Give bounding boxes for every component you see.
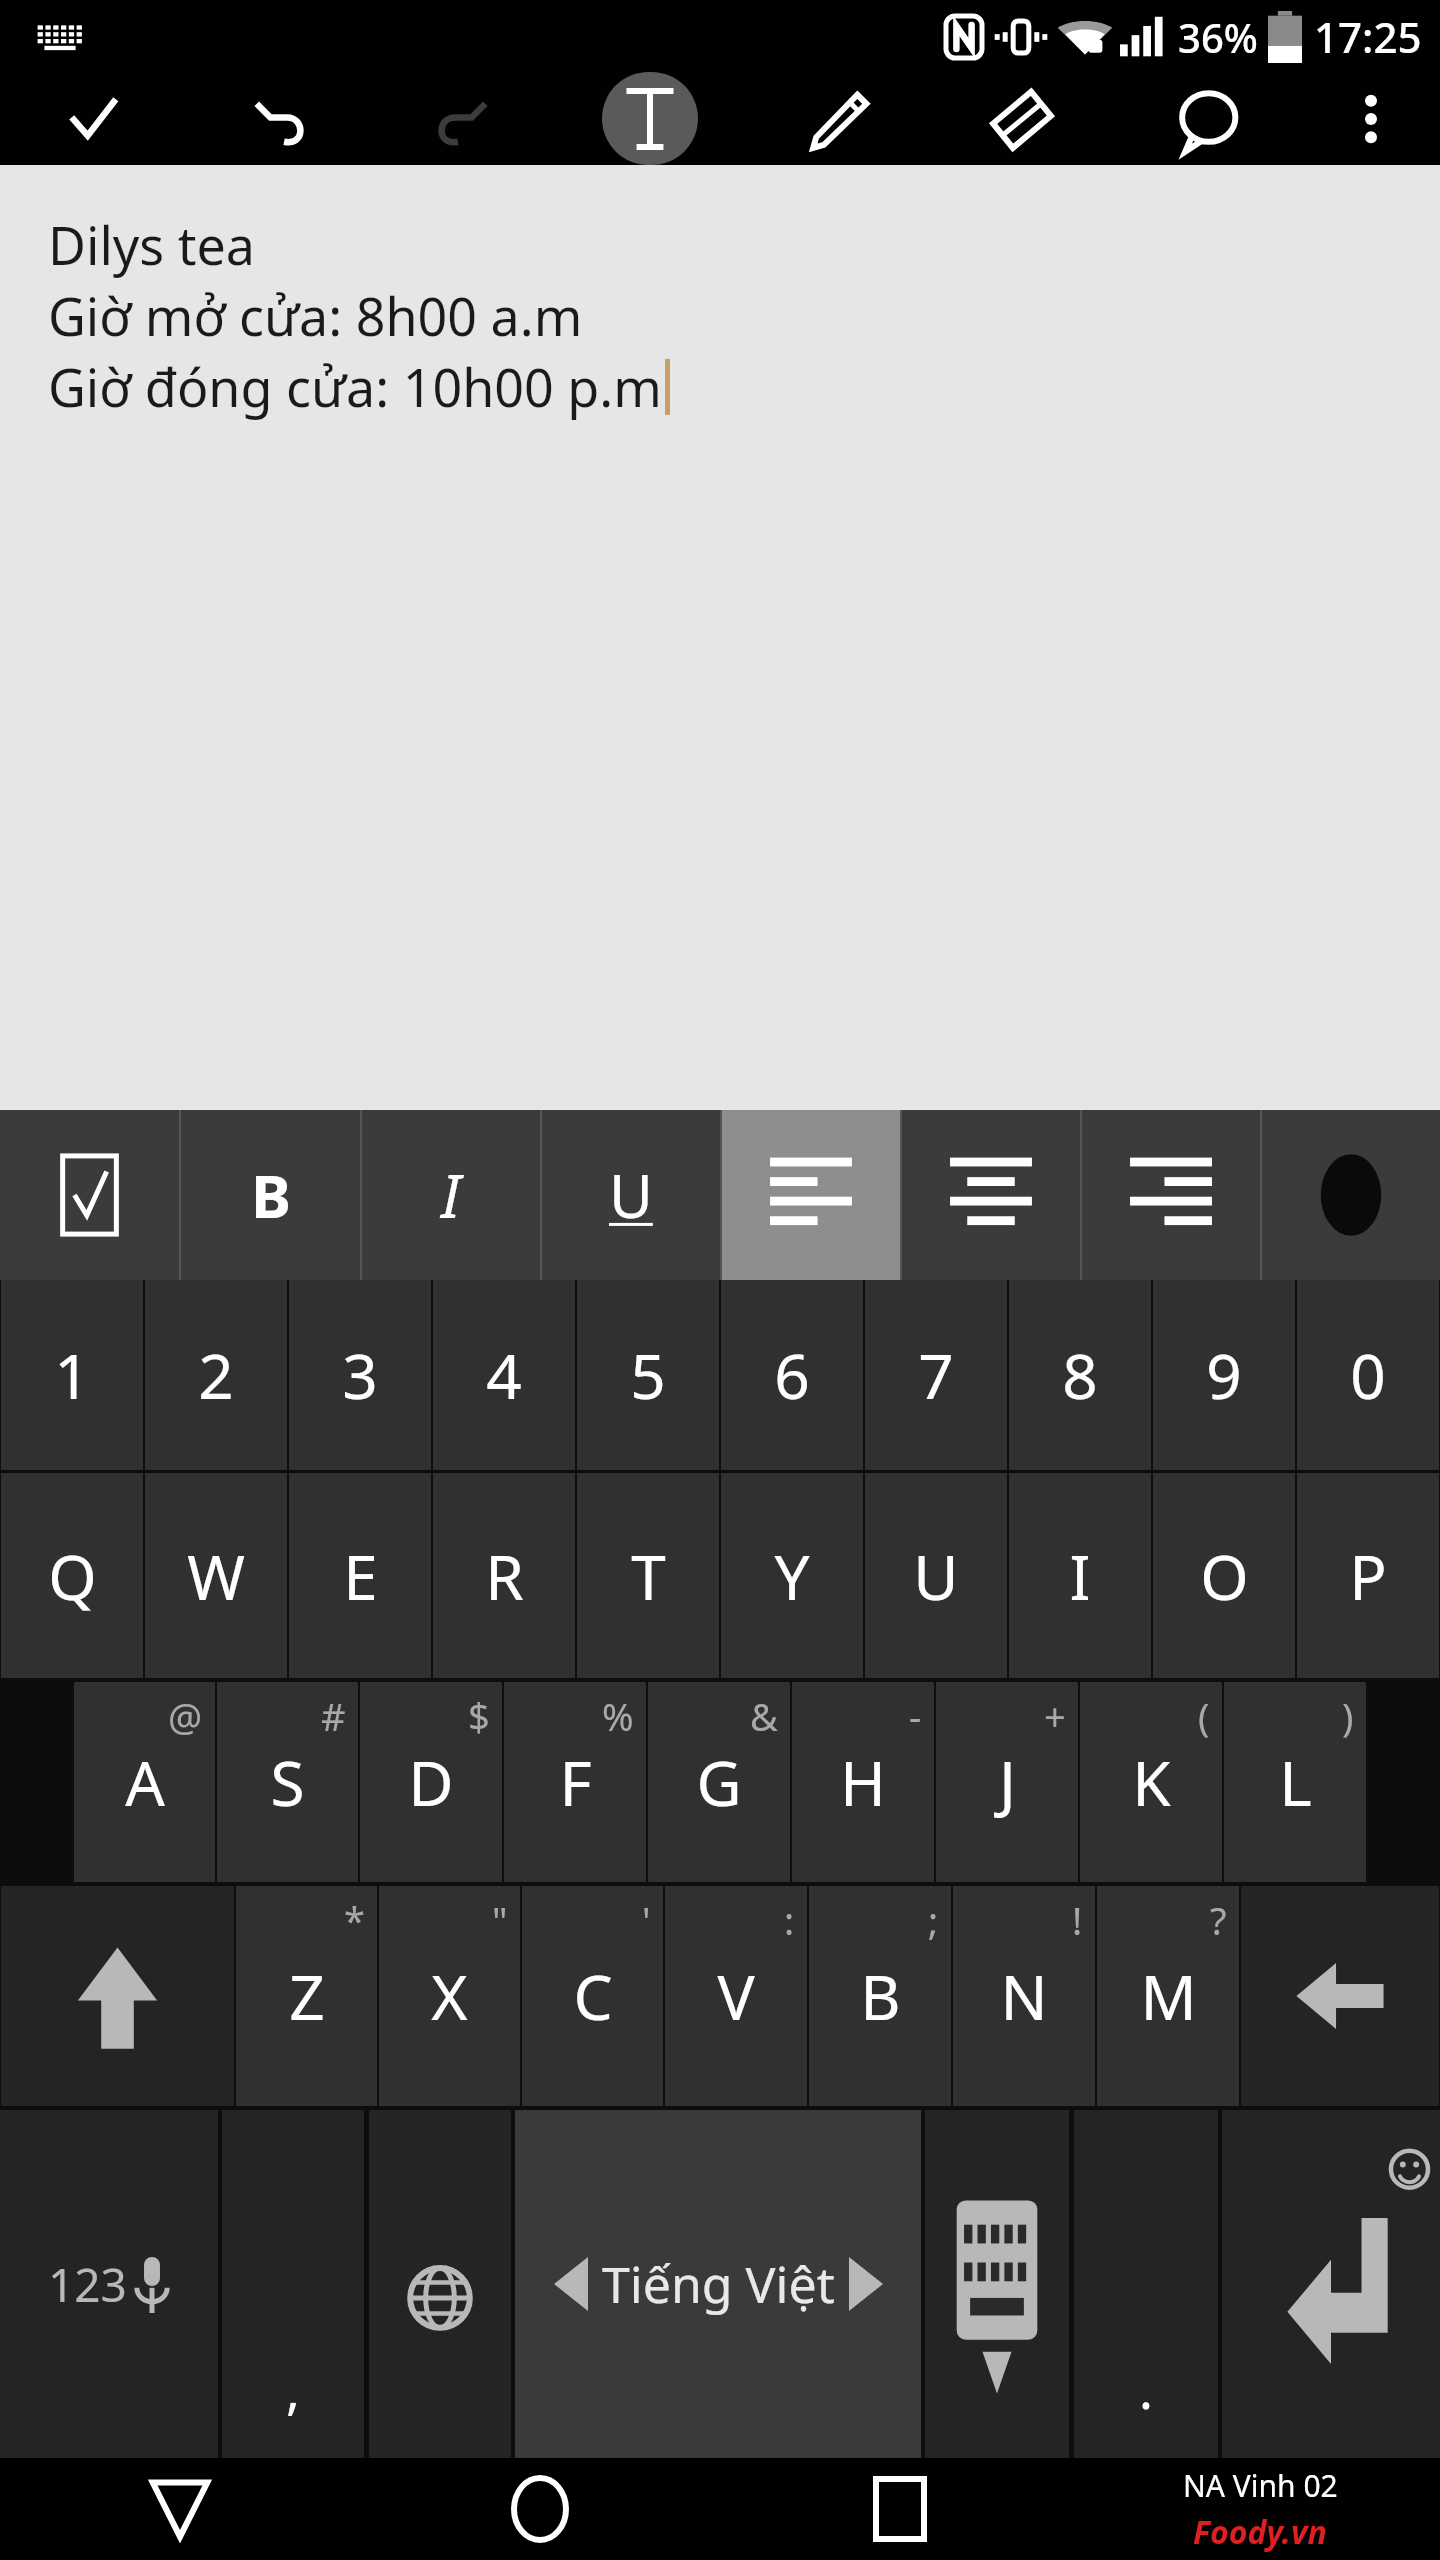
button[interactable]: Bold [181, 1110, 360, 1280]
staticText: K [1132, 1740, 1171, 1824]
staticText: W [187, 1534, 245, 1618]
button[interactable]: Undo [185, 72, 371, 165]
button[interactable]: 4 [433, 1280, 575, 1470]
button[interactable]: ; [809, 1886, 951, 2106]
staticText: Q [48, 1534, 97, 1618]
button[interactable]: U [865, 1473, 1007, 1678]
button[interactable]: Q [1, 1473, 143, 1678]
button[interactable]: Text colour [1262, 1110, 1440, 1280]
staticText: T [631, 1534, 666, 1618]
staticText: ! [1072, 1894, 1083, 1946]
button[interactable]: - [792, 1682, 934, 1882]
staticText: ? [1210, 1894, 1227, 1946]
staticText: - [909, 1690, 922, 1742]
staticText: 1 [54, 1333, 90, 1417]
button[interactable]: Underline [542, 1110, 720, 1280]
button[interactable]: Pen [743, 72, 929, 165]
button[interactable]: Back [0, 2458, 360, 2560]
button[interactable]: Align center [902, 1110, 1080, 1280]
button[interactable]: Enter [1222, 2110, 1440, 2458]
button[interactable]: Backspace [1241, 1886, 1439, 2106]
button[interactable]: More options [1301, 72, 1440, 165]
staticText: H [840, 1740, 886, 1824]
button[interactable]: ) [1224, 1682, 1366, 1882]
button[interactable]: W [145, 1473, 287, 1678]
button[interactable]: Hide keyboard [925, 2110, 1069, 2458]
button[interactable]: O [1153, 1473, 1295, 1678]
button[interactable]: * [236, 1886, 377, 2106]
button[interactable]: 3 [289, 1280, 431, 1470]
button[interactable]: Numbers and voice input [0, 2110, 218, 2458]
button[interactable]: 7 [865, 1280, 1007, 1470]
button[interactable]: 0 [1297, 1280, 1439, 1470]
button[interactable]: Align right [1082, 1110, 1260, 1280]
button[interactable]: 1 [1, 1280, 143, 1470]
button[interactable]: 8 [1009, 1280, 1151, 1470]
button[interactable]: ' [522, 1886, 663, 2106]
staticText: * [344, 1894, 365, 1946]
button[interactable]: ! [953, 1886, 1095, 2106]
button[interactable]: Space, Tiếng Việt [515, 2110, 921, 2458]
staticText: X [431, 1954, 468, 2038]
button[interactable]: P [1297, 1473, 1439, 1678]
button[interactable]: Text tool [557, 72, 743, 165]
button[interactable]: Italic [362, 1110, 540, 1280]
button[interactable]: : [665, 1886, 807, 2106]
button[interactable]: + [936, 1682, 1078, 1882]
staticText: 123 [48, 2253, 127, 2316]
staticText: Y [774, 1534, 810, 1618]
staticText: G [696, 1740, 742, 1824]
button[interactable]: & [648, 1682, 790, 1882]
staticText: C [573, 1954, 613, 2038]
staticText: 17:25 [1314, 8, 1422, 65]
button[interactable]: Y [721, 1473, 863, 1678]
staticText: I [441, 1154, 461, 1236]
button[interactable]: Comment [1115, 72, 1301, 165]
button[interactable]: # [217, 1682, 358, 1882]
button[interactable]: " [379, 1886, 520, 2106]
staticText: ; [928, 1894, 939, 1946]
button[interactable]: R [433, 1473, 575, 1678]
staticText: : [784, 1894, 795, 1946]
staticText: ' [642, 1894, 651, 1946]
button[interactable]: % [504, 1682, 646, 1882]
button[interactable]: Shift [1, 1886, 234, 2106]
staticText: D [408, 1740, 454, 1824]
staticText: F [559, 1740, 592, 1824]
button[interactable]: Switch language [369, 2110, 511, 2458]
button[interactable]: ? [1097, 1886, 1239, 2106]
button[interactable]: Recent apps [720, 2458, 1080, 2560]
button[interactable]: ( [1080, 1682, 1222, 1882]
staticText: 4 [486, 1333, 522, 1417]
button[interactable]: 9 [1153, 1280, 1295, 1470]
button[interactable]: 6 [721, 1280, 863, 1470]
button[interactable]: T [577, 1473, 719, 1678]
button[interactable]: I [1009, 1473, 1151, 1678]
staticText: & [750, 1690, 778, 1742]
staticText: V [717, 1954, 755, 2038]
button[interactable]: Redo [371, 72, 557, 165]
staticText: % [602, 1690, 634, 1742]
button[interactable]: 5 [577, 1280, 719, 1470]
staticText: @ [168, 1690, 203, 1742]
button[interactable]: Done [0, 72, 185, 165]
button[interactable]: @ [74, 1682, 215, 1882]
staticText: R [485, 1534, 524, 1618]
button[interactable]: Home [360, 2458, 720, 2560]
button[interactable]: , [222, 2110, 364, 2458]
button[interactable]: Checklist [0, 1110, 179, 1280]
button[interactable]: E [289, 1473, 431, 1678]
staticText: B [860, 1954, 901, 2038]
button[interactable]: Eraser [929, 72, 1115, 165]
staticText: 9 [1206, 1333, 1242, 1417]
button[interactable]: . [1074, 2110, 1218, 2458]
staticText: P [1349, 1534, 1387, 1618]
button[interactable]: 2 [145, 1280, 287, 1470]
staticText: M [1140, 1954, 1197, 2038]
button[interactable]: $ [360, 1682, 502, 1882]
button[interactable]: Dilys tea [0, 165, 1440, 1110]
button[interactable]: Align left [722, 1110, 900, 1280]
staticText: 0 [1350, 1333, 1386, 1417]
staticText: U [609, 1154, 653, 1236]
staticText: 36% [1178, 10, 1258, 64]
